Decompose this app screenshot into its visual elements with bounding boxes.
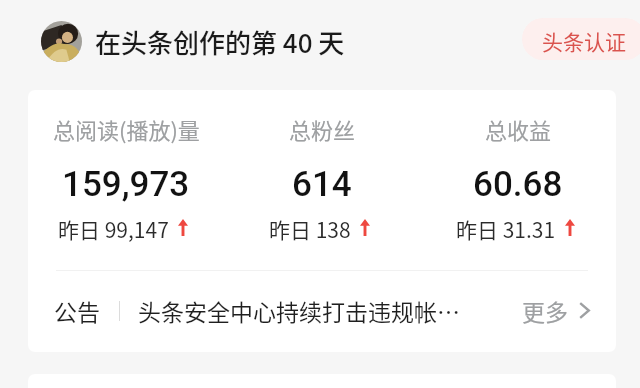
staticText: 总收益 <box>485 113 552 145</box>
staticText: 总粉丝 <box>289 113 356 145</box>
staticText: 159,973 <box>62 164 190 205</box>
staticText: 更多 <box>522 294 568 327</box>
staticText: 昨日 31.31 <box>456 214 556 244</box>
button[interactable]: 头条认证 <box>522 18 640 60</box>
staticText: 总阅读(播放)量 <box>53 113 200 145</box>
button[interactable]: Profile avatar <box>41 21 82 62</box>
button[interactable]: 公告 <box>28 269 616 352</box>
staticText: 60.68 <box>473 164 563 205</box>
staticText: 昨日 99,147 <box>58 214 169 244</box>
staticText: 头条认证 <box>542 26 626 56</box>
staticText: 614 <box>292 164 352 205</box>
staticText: 昨日 138 <box>269 214 351 244</box>
staticText: 公告 <box>54 294 100 327</box>
staticText: 头条安全中心持续打击违规帐… <box>138 294 514 327</box>
staticText: 在头条创作的第 40 天 <box>95 23 345 61</box>
